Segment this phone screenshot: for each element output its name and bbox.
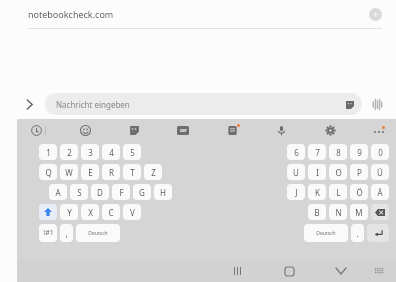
button[interactable]: 8: [329, 144, 347, 160]
button[interactable]: C: [102, 204, 120, 220]
staticText: M: [355, 207, 363, 218]
button[interactable]: T: [123, 164, 141, 180]
staticText: Nachricht eingeben: [56, 99, 130, 110]
button[interactable]: U: [287, 164, 305, 180]
button[interactable]: 9: [350, 144, 368, 160]
button[interactable]: Ä: [371, 184, 389, 200]
button[interactable]: Recents: [226, 260, 248, 282]
button[interactable]: R: [102, 164, 120, 180]
staticText: notebookcheck.com: [28, 8, 114, 20]
button[interactable]: 0: [371, 144, 389, 160]
staticText: D: [97, 187, 103, 198]
button[interactable]: F: [112, 184, 130, 200]
staticText: K: [315, 187, 320, 198]
button[interactable]: M: [350, 204, 368, 220]
button[interactable]: Microphone: [272, 121, 290, 139]
button[interactable]: G: [133, 184, 151, 200]
staticText: L: [336, 187, 341, 198]
staticText: 2: [67, 147, 72, 158]
staticText: F: [119, 187, 124, 198]
staticText: X: [88, 207, 93, 218]
button[interactable]: P: [350, 164, 368, 180]
staticText: ,: [65, 228, 68, 239]
button[interactable]: 7: [308, 144, 326, 160]
button[interactable]: Hide keyboard: [330, 260, 352, 282]
button[interactable]: Home: [278, 260, 300, 282]
button[interactable]: Deutsch: [304, 224, 348, 242]
button[interactable]: 6: [287, 144, 305, 160]
button[interactable]: 3: [81, 144, 99, 160]
button[interactable]: Shift: [39, 204, 57, 220]
button[interactable]: Backspace: [371, 204, 389, 220]
staticText: H: [160, 187, 166, 198]
button[interactable]: Nachricht eingeben: [45, 93, 362, 115]
staticText: Q: [45, 167, 52, 178]
button[interactable]: Deutsch: [76, 224, 120, 242]
staticText: B: [314, 207, 320, 218]
staticText: 6: [294, 147, 299, 158]
staticText: 0: [378, 147, 383, 158]
button[interactable]: S: [70, 184, 88, 200]
staticText: 7: [315, 147, 320, 158]
button[interactable]: 5: [123, 144, 141, 160]
button[interactable]: Stickers: [125, 121, 143, 139]
staticText: T: [130, 167, 135, 178]
button[interactable]: A: [49, 184, 67, 200]
button[interactable]: K: [308, 184, 326, 200]
button[interactable]: Y: [60, 204, 78, 220]
button[interactable]: .: [351, 224, 364, 242]
staticText: U: [293, 167, 299, 178]
button[interactable]: Settings: [321, 121, 339, 139]
button[interactable]: GIF: [174, 121, 192, 139]
button[interactable]: Translate: [27, 121, 45, 139]
staticText: P: [357, 167, 362, 178]
button[interactable]: X: [81, 204, 99, 220]
button[interactable]: 1: [39, 144, 57, 160]
button[interactable]: Q: [39, 164, 57, 180]
button[interactable]: Voice: [366, 93, 388, 115]
button[interactable]: Add: [369, 8, 382, 21]
button[interactable]: B: [308, 204, 326, 220]
staticText: O: [335, 167, 342, 178]
button[interactable]: Sticker: [344, 99, 355, 110]
button[interactable]: Enter: [367, 224, 389, 242]
staticText: 8: [336, 147, 341, 158]
button[interactable]: W: [60, 164, 78, 180]
button[interactable]: 2: [60, 144, 78, 160]
staticText: .: [356, 228, 359, 239]
button[interactable]: Expand: [18, 93, 40, 115]
staticText: J: [295, 187, 298, 198]
button[interactable]: H: [154, 184, 172, 200]
button[interactable]: Ü: [371, 164, 389, 180]
staticText: A: [55, 187, 61, 198]
staticText: I: [316, 167, 319, 178]
staticText: 1: [46, 147, 51, 158]
button[interactable]: !#1: [39, 224, 57, 242]
button[interactable]: J: [287, 184, 305, 200]
staticText: 9: [357, 147, 362, 158]
button[interactable]: Switch keyboard: [368, 260, 390, 282]
button[interactable]: L: [329, 184, 347, 200]
button[interactable]: I: [308, 164, 326, 180]
button[interactable]: D: [91, 184, 109, 200]
staticText: Deutsch: [88, 230, 108, 237]
button[interactable]: V: [123, 204, 141, 220]
button[interactable]: ,: [60, 224, 73, 242]
button[interactable]: O: [329, 164, 347, 180]
staticText: G: [139, 187, 145, 198]
button[interactable]: 4: [102, 144, 120, 160]
button[interactable]: Clipboard: [223, 121, 241, 139]
staticText: R: [109, 167, 114, 178]
button[interactable]: E: [81, 164, 99, 180]
button[interactable]: More options: [370, 121, 388, 139]
button[interactable]: Emoji: [76, 121, 94, 139]
staticText: V: [130, 207, 135, 218]
staticText: N: [335, 207, 342, 218]
staticText: Ä: [377, 187, 383, 198]
button[interactable]: Z: [144, 164, 162, 180]
staticText: Ö: [356, 187, 363, 198]
staticText: GIF: [180, 128, 187, 133]
button[interactable]: N: [329, 204, 347, 220]
staticText: Z: [151, 167, 156, 178]
button[interactable]: Ö: [350, 184, 368, 200]
